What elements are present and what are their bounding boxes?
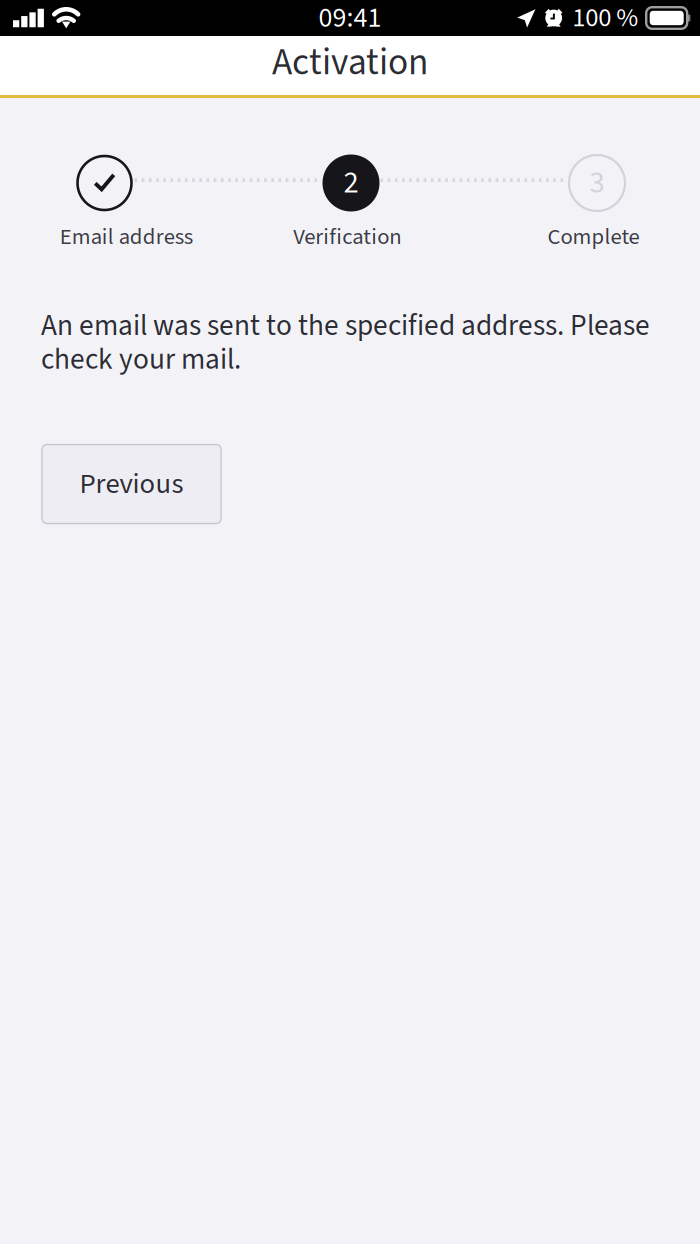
staticText: Verification — [293, 221, 401, 253]
staticText: 2 — [343, 161, 358, 205]
staticText: 09:41 — [318, 0, 381, 38]
staticText: Email address — [60, 221, 193, 253]
staticText: Previous — [79, 464, 183, 504]
staticText: Complete — [547, 221, 639, 253]
staticText: 3 — [589, 161, 604, 205]
button[interactable]: Previous — [42, 444, 221, 523]
staticText: An email was sent to the specified addre… — [41, 305, 650, 380]
staticText: Activation — [272, 36, 428, 89]
staticText: 100 % — [572, 0, 638, 37]
